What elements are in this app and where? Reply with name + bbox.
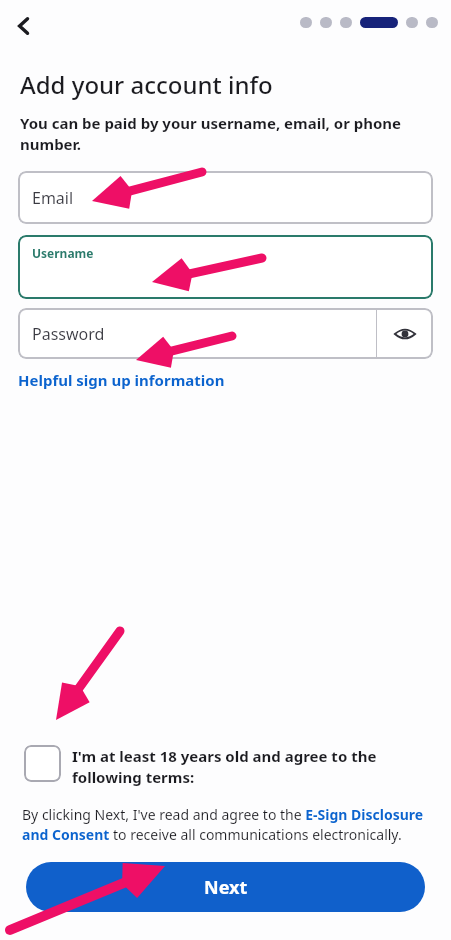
staticText: Add your account info bbox=[20, 68, 273, 101]
button[interactable]: Password bbox=[18, 308, 376, 359]
staticText: Username bbox=[32, 245, 94, 261]
button[interactable]: Show password bbox=[377, 308, 433, 359]
staticText: Password bbox=[32, 323, 105, 345]
button[interactable]: Email bbox=[18, 171, 433, 224]
button[interactable]: I'm at least 18 years old and agree to t… bbox=[24, 745, 429, 788]
staticText: I'm at least 18 years old and agree to t… bbox=[72, 746, 429, 788]
button[interactable]: Back bbox=[2, 4, 46, 48]
staticText: You can be paid by your username, email,… bbox=[20, 113, 427, 155]
button[interactable]: Helpful sign up information bbox=[18, 370, 225, 390]
staticText: Helpful sign up information bbox=[18, 370, 225, 390]
staticText: Email bbox=[32, 187, 74, 209]
button[interactable]: Username bbox=[18, 235, 433, 299]
staticText: By clicking Next, I've read and agree to… bbox=[22, 805, 429, 844]
button[interactable]: Next bbox=[26, 862, 425, 912]
staticText: Next bbox=[204, 875, 248, 900]
